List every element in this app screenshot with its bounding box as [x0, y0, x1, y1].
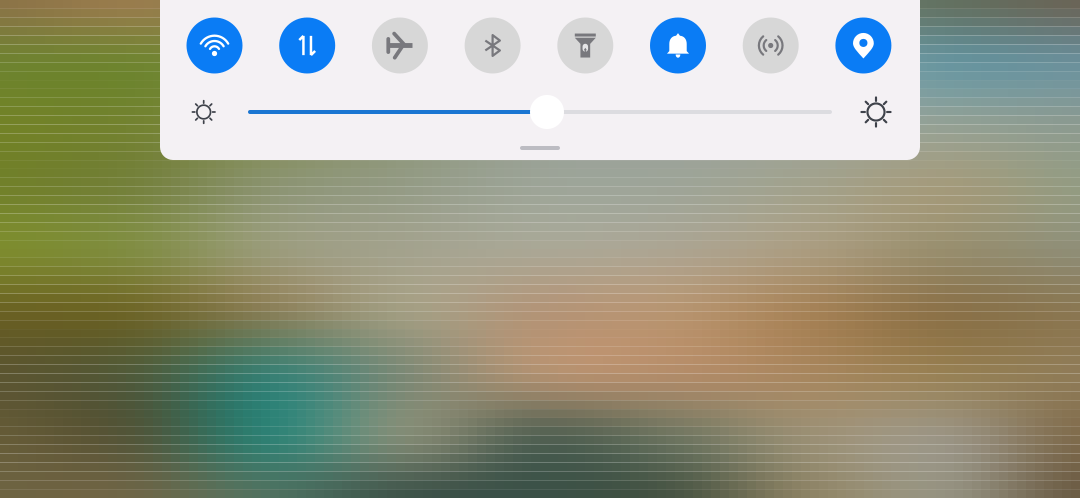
button[interactable]: Hotspot: [743, 17, 799, 73]
button[interactable]: Mobile data: [279, 17, 335, 73]
button[interactable]: Wi-Fi: [186, 17, 242, 73]
button[interactable]: Ringer: [650, 17, 706, 73]
button[interactable]: Airplane mode: [372, 17, 428, 73]
button[interactable]: Bluetooth: [465, 17, 521, 73]
button[interactable]: Location: [835, 17, 891, 73]
button[interactable]: Flashlight: [557, 17, 613, 73]
